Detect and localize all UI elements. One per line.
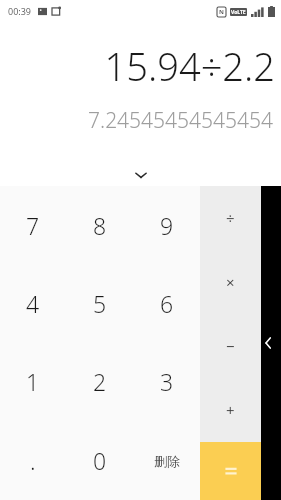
- button[interactable]: Minus: [200, 314, 261, 378]
- staticText: +: [226, 400, 235, 420]
- button[interactable]: Equals: [200, 442, 261, 500]
- staticText: 00:39: [8, 5, 32, 17]
- staticText: 5: [93, 288, 107, 319]
- staticText: 2: [93, 366, 107, 397]
- staticText: ×: [226, 272, 235, 292]
- button[interactable]: 3: [133, 342, 200, 421]
- button[interactable]: 7: [0, 186, 66, 264]
- staticText: 0: [93, 445, 107, 476]
- staticText: ÷: [226, 208, 235, 228]
- staticText: 3: [160, 366, 174, 397]
- staticText: N: [219, 8, 224, 16]
- staticText: 7.24545454545454: [88, 106, 273, 135]
- staticText: 9: [160, 210, 174, 241]
- button[interactable]: 0: [66, 421, 133, 500]
- button[interactable]: Multiply: [200, 250, 261, 314]
- staticText: 7: [26, 210, 40, 241]
- staticText: VoLTE: [231, 9, 246, 16]
- staticText: 删除: [154, 453, 180, 469]
- button[interactable]: Expand history: [0, 164, 281, 186]
- staticText: −: [226, 336, 235, 356]
- button[interactable]: 删除: [133, 421, 200, 500]
- button[interactable]: Divide: [200, 186, 261, 250]
- staticText: 8: [93, 210, 107, 241]
- button[interactable]: 2: [66, 342, 133, 421]
- staticText: 15.94÷2.2: [104, 40, 275, 92]
- button[interactable]: 1: [0, 342, 66, 421]
- button[interactable]: Open panel: [261, 186, 281, 500]
- staticText: 6: [160, 288, 174, 319]
- button[interactable]: 5: [66, 264, 133, 342]
- button[interactable]: .: [0, 421, 66, 500]
- button[interactable]: 9: [133, 186, 200, 264]
- button[interactable]: 8: [66, 186, 133, 264]
- button[interactable]: 6: [133, 264, 200, 342]
- staticText: 4: [26, 288, 40, 319]
- staticText: .: [30, 445, 36, 476]
- button[interactable]: 4: [0, 264, 66, 342]
- button[interactable]: Plus: [200, 378, 261, 442]
- staticText: 1: [26, 366, 40, 397]
